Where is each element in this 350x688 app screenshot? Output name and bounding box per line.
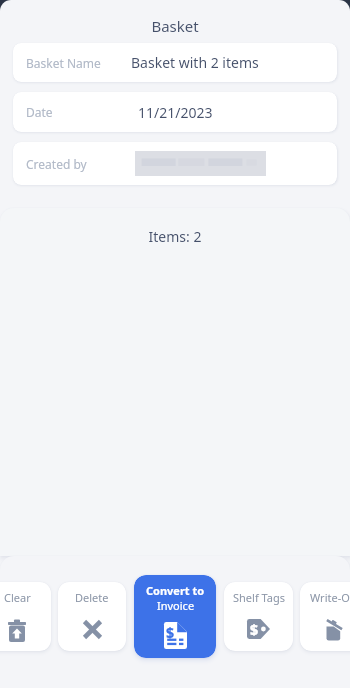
button[interactable]: Basket Name: [13, 43, 337, 82]
other: Write-Off: [324, 619, 345, 641]
button[interactable]: Shelf Tags: [224, 582, 293, 651]
staticText: $: [166, 623, 175, 642]
button[interactable]: Clear: [0, 582, 51, 651]
staticText: Write-Off: [310, 590, 350, 605]
button[interactable]: Created by: [13, 142, 337, 185]
staticText: 11/21/2023: [138, 103, 213, 122]
button[interactable]: Convert to: [134, 575, 216, 658]
staticText: Basket with 2 items: [131, 53, 259, 72]
other: Shelf Tags: [247, 619, 270, 639]
staticText: Invoice: [157, 598, 195, 613]
staticText: Convert to: [146, 583, 205, 598]
button[interactable]: Write-Off: [300, 582, 350, 651]
other: Clear: [8, 619, 26, 642]
staticText: Shelf Tags: [233, 590, 285, 605]
staticText: Created by: [26, 156, 87, 172]
staticText: Basket: [0, 16, 350, 36]
staticText: Date: [26, 104, 53, 120]
staticText: Delete: [75, 590, 109, 605]
button[interactable]: Date: [13, 92, 337, 132]
staticText: Clear: [4, 590, 31, 605]
button[interactable]: Delete: [58, 582, 126, 651]
staticText: $: [250, 620, 259, 639]
other: Delete: [82, 619, 103, 640]
staticText: Items: 2: [0, 227, 350, 246]
staticText: Basket Name: [26, 55, 101, 71]
